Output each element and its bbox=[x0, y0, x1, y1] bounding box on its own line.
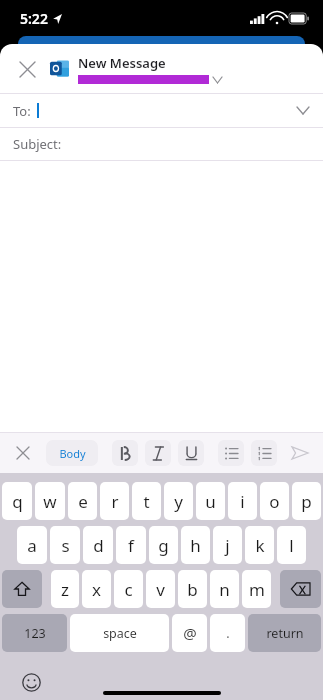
staticText: 5:22 bbox=[20, 9, 48, 28]
staticText: e bbox=[78, 490, 88, 513]
button[interactable]: b bbox=[178, 570, 207, 608]
staticText: r bbox=[111, 490, 119, 513]
button[interactable]: n bbox=[210, 570, 239, 608]
staticText: x bbox=[92, 578, 101, 601]
staticText: z bbox=[61, 578, 69, 601]
button[interactable]: c bbox=[114, 570, 143, 608]
staticText: h bbox=[190, 534, 201, 557]
button[interactable]: l bbox=[277, 526, 306, 564]
staticText: Subject: bbox=[13, 135, 62, 153]
button[interactable]: Body bbox=[46, 440, 98, 466]
staticText: k bbox=[255, 534, 265, 557]
staticText: a bbox=[27, 534, 37, 557]
staticText: t bbox=[143, 490, 150, 513]
button[interactable]: @ bbox=[172, 614, 207, 652]
button[interactable]: y bbox=[164, 482, 193, 520]
staticText: w bbox=[43, 490, 57, 513]
staticText: v bbox=[156, 578, 165, 601]
button[interactable]: w bbox=[35, 482, 65, 520]
staticText: d bbox=[93, 534, 104, 557]
button[interactable]: Bulleted list bbox=[218, 440, 244, 466]
staticText: g bbox=[158, 534, 169, 557]
staticText: j bbox=[225, 534, 230, 557]
button[interactable]: t bbox=[132, 482, 161, 520]
button[interactable]: o bbox=[260, 482, 289, 520]
button[interactable]: Shift bbox=[2, 570, 42, 608]
button[interactable]: Close bbox=[10, 52, 44, 86]
button[interactable]: u bbox=[196, 482, 225, 520]
staticText: s bbox=[61, 534, 70, 557]
button[interactable]: a bbox=[17, 526, 47, 564]
button[interactable]: q bbox=[2, 482, 32, 520]
button[interactable]: Emoji bbox=[20, 671, 42, 693]
button[interactable]: Subject: bbox=[0, 128, 323, 160]
button[interactable]: e bbox=[68, 482, 97, 520]
staticText: 123 bbox=[24, 625, 46, 642]
button[interactable]: f bbox=[116, 526, 146, 564]
button[interactable]: Close formatting bbox=[10, 440, 36, 466]
staticText: l bbox=[289, 534, 294, 557]
staticText: Body bbox=[59, 446, 86, 461]
button[interactable]: 123 bbox=[2, 614, 67, 652]
button[interactable]: return bbox=[248, 614, 321, 652]
staticText: b bbox=[187, 578, 198, 601]
button[interactable]: i bbox=[228, 482, 257, 520]
button[interactable]: Send bbox=[285, 438, 315, 468]
staticText: i bbox=[240, 490, 245, 513]
button[interactable]: . bbox=[210, 614, 245, 652]
staticText: To: bbox=[13, 102, 31, 120]
button[interactable]: p bbox=[292, 482, 321, 520]
button[interactable]: h bbox=[181, 526, 210, 564]
button[interactable]: To: bbox=[0, 94, 323, 127]
staticText: return bbox=[266, 625, 304, 642]
staticText: y bbox=[174, 490, 183, 513]
button[interactable]: Bold bbox=[112, 440, 138, 466]
button[interactable]: space bbox=[70, 614, 169, 652]
staticText: m bbox=[249, 578, 265, 601]
staticText: space bbox=[103, 625, 137, 642]
staticText: q bbox=[12, 490, 23, 513]
staticText: @ bbox=[183, 623, 197, 643]
staticText: u bbox=[205, 490, 216, 513]
staticText: n bbox=[219, 578, 230, 601]
button[interactable]: Numbered list bbox=[251, 440, 277, 466]
button[interactable]: r bbox=[100, 482, 129, 520]
staticText: c bbox=[124, 578, 133, 601]
button[interactable]: z bbox=[51, 570, 79, 608]
button[interactable]: m bbox=[242, 570, 271, 608]
button[interactable]: g bbox=[149, 526, 178, 564]
button[interactable]: d bbox=[83, 526, 113, 564]
staticText: . bbox=[226, 625, 230, 642]
button[interactable]: k bbox=[245, 526, 274, 564]
button[interactable]: j bbox=[213, 526, 242, 564]
button[interactable]: v bbox=[146, 570, 175, 608]
button[interactable]: Backspace bbox=[280, 570, 321, 608]
button[interactable]: Underline bbox=[178, 440, 204, 466]
button[interactable]: s bbox=[50, 526, 80, 564]
button[interactable]: x bbox=[82, 570, 111, 608]
staticText: f bbox=[128, 534, 134, 557]
button[interactable]: Italic bbox=[145, 440, 171, 466]
staticText: p bbox=[301, 490, 312, 513]
staticText: New Message bbox=[78, 54, 166, 72]
staticText: o bbox=[269, 490, 280, 513]
